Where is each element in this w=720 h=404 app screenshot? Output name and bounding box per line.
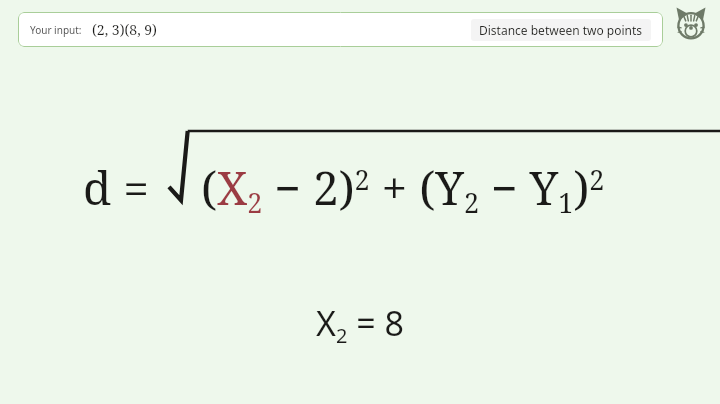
button[interactable]: Distance between two points [471, 19, 651, 41]
staticText: Your input: [30, 23, 82, 37]
staticText: (2, 3)(8, 9) [92, 20, 157, 39]
staticText: X2 = 8 [316, 300, 404, 349]
staticText: (X2 − 2)2 + (Y2 − Y1)2 [201, 156, 605, 221]
button[interactable]: Your input: [18, 12, 663, 47]
staticText: Distance between two points [479, 22, 643, 38]
button[interactable]: App logo [670, 3, 712, 45]
staticText: d = [83, 156, 149, 219]
